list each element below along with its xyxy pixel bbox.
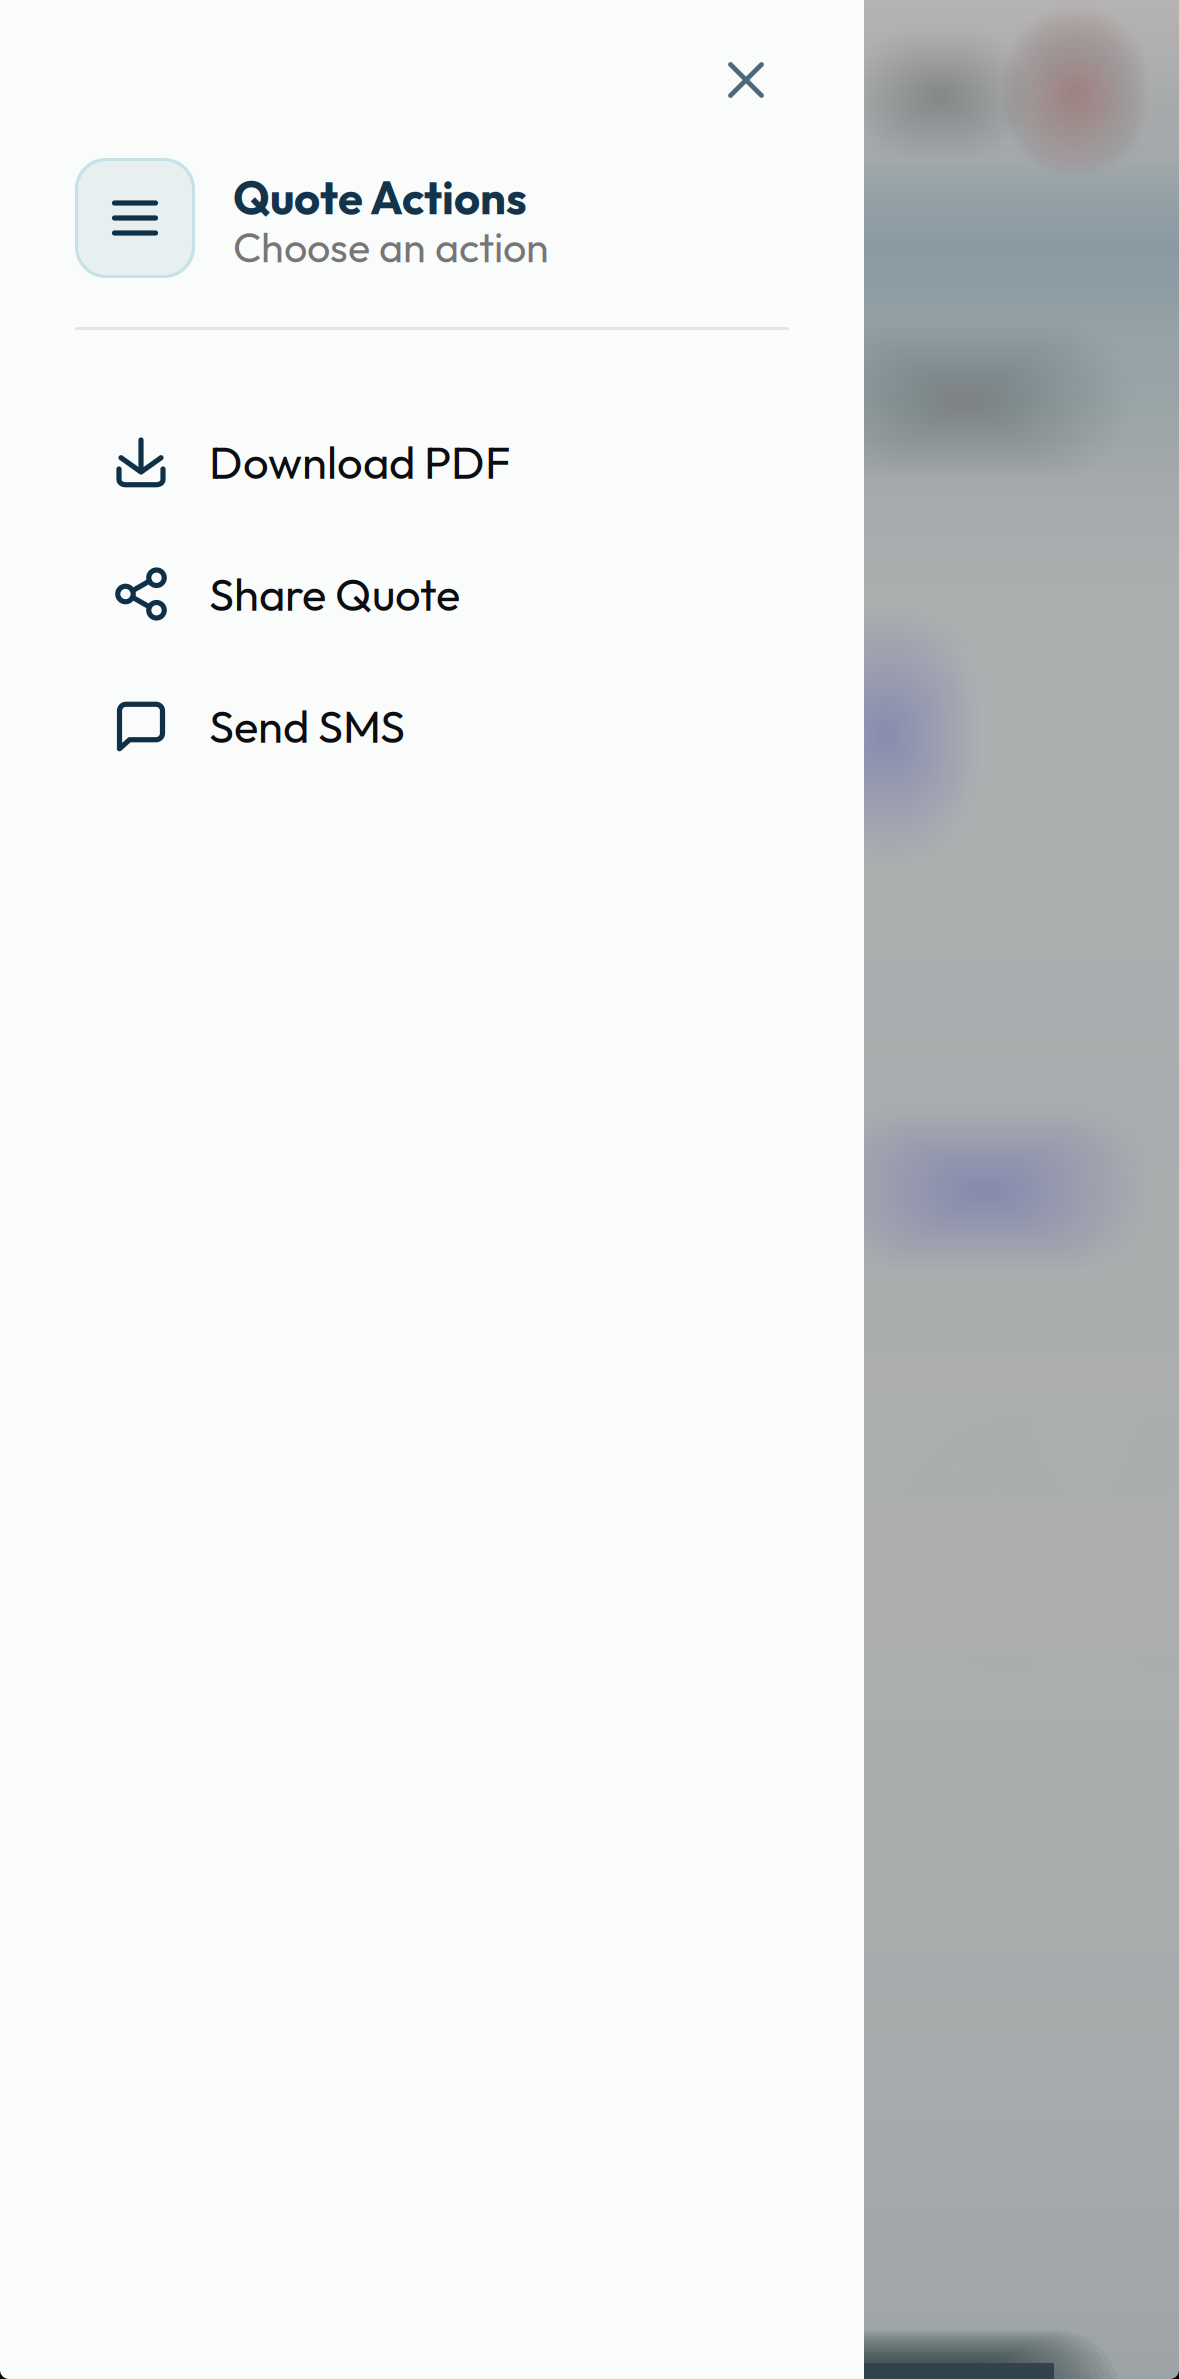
button[interactable]: Close — [698, 32, 794, 128]
staticText: Choose an action — [233, 221, 549, 273]
staticText: Quote Actions — [233, 169, 527, 226]
button[interactable]: Share Quote — [0, 539, 864, 649]
staticText: Send SMS — [209, 697, 405, 754]
button[interactable]: Download PDF — [0, 407, 864, 517]
staticText: Download PDF — [209, 433, 511, 490]
staticText: Share Quote — [209, 565, 460, 622]
button[interactable]: Send SMS — [0, 671, 864, 781]
